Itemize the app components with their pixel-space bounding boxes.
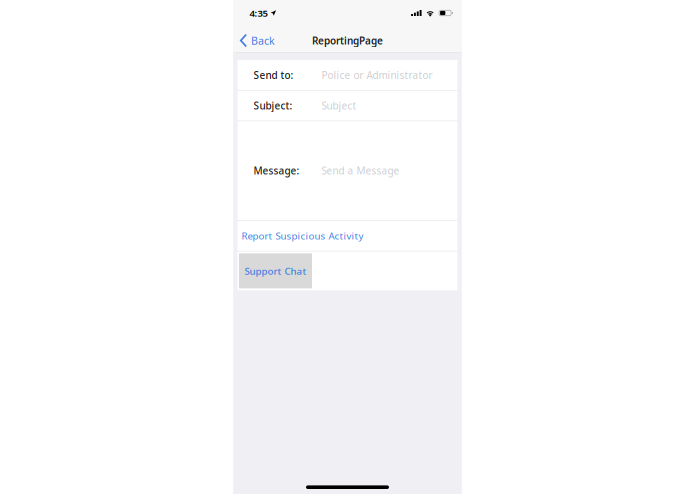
staticText: ReportingPage xyxy=(312,34,383,47)
staticText: Send a Message xyxy=(321,164,399,177)
staticText: Back xyxy=(251,33,275,48)
staticText: Police or Administrator xyxy=(321,68,432,82)
button[interactable]: Send to: xyxy=(237,60,457,90)
button[interactable]: Report Suspicious Activity xyxy=(237,221,457,251)
button[interactable]: Message: xyxy=(237,121,457,220)
button[interactable]: Support Chat xyxy=(239,253,312,288)
button[interactable]: Subject: xyxy=(237,91,457,121)
staticText: 4:35 xyxy=(249,6,267,20)
staticText: Send to: xyxy=(253,68,293,82)
staticText: Report Suspicious Activity xyxy=(241,229,363,242)
button[interactable]: Back xyxy=(233,26,283,54)
staticText: Subject: xyxy=(253,99,292,112)
staticText: Support Chat xyxy=(244,264,306,278)
staticText: Subject xyxy=(321,99,356,112)
staticText: Message: xyxy=(253,164,299,177)
